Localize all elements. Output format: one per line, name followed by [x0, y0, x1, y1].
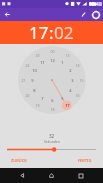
staticText: 15 [79, 78, 84, 83]
staticText: 19 [35, 103, 40, 108]
staticText: 4 [69, 88, 72, 93]
button[interactable]: 16 [73, 91, 82, 100]
staticText: 7 [41, 96, 44, 101]
button[interactable] [7, 146, 96, 153]
staticText: 2 [69, 68, 72, 73]
button[interactable]: 3 [68, 76, 76, 84]
staticText: 21 [21, 78, 26, 83]
staticText: : [49, 21, 54, 44]
button[interactable]: 20 [23, 91, 32, 100]
button[interactable]: 8 [30, 86, 38, 94]
button[interactable]: 12 [48, 56, 56, 64]
staticText: 8 [33, 88, 36, 93]
staticText: 17 [65, 103, 70, 108]
staticText: 13 [65, 53, 70, 58]
button[interactable]: 11 [38, 58, 46, 66]
button[interactable]: Settings [90, 9, 101, 20]
button[interactable]: 14 [73, 61, 82, 70]
button[interactable]: 13 [63, 51, 72, 60]
button[interactable]: 1 [58, 58, 66, 66]
staticText: 1 [61, 60, 64, 65]
staticText: 6 [51, 98, 54, 103]
staticText: 00 [50, 49, 55, 54]
button[interactable]: 23 [33, 51, 42, 60]
staticText: 3 [71, 78, 74, 83]
staticText: 20 [25, 93, 30, 98]
button[interactable]: 22 [23, 61, 32, 70]
button[interactable]: FERTIG [73, 156, 97, 165]
staticText: 22 [25, 63, 30, 68]
staticText: FERTIG [78, 158, 92, 163]
button[interactable]: Home [45, 169, 58, 182]
staticText: 11 [40, 60, 45, 65]
staticText: Sekunden [44, 139, 60, 144]
staticText: 18 [50, 107, 55, 112]
button[interactable]: Recents [74, 169, 87, 182]
button[interactable]: 18 [48, 105, 57, 114]
button[interactable]: 21 [19, 76, 28, 85]
button[interactable]: 02 [54, 21, 74, 44]
button[interactable]: ZURÜCK [6, 156, 32, 165]
button[interactable]: 19 [33, 101, 42, 110]
button[interactable]: 17 [63, 101, 72, 110]
button[interactable]: Edit [78, 9, 89, 20]
button[interactable]: 9 [28, 76, 36, 84]
staticText: 12 [50, 58, 55, 63]
staticText: 9 [31, 78, 34, 83]
button[interactable]: Back [16, 169, 29, 182]
button[interactable]: 17 [29, 21, 49, 44]
staticText: 16 [75, 93, 80, 98]
staticText: 12:48 [89, 1, 102, 8]
button[interactable]: 7 [38, 94, 46, 102]
button[interactable]: 00 [48, 47, 57, 56]
button[interactable]: 10 [30, 66, 38, 74]
staticText: 14 [75, 63, 80, 68]
staticText: 23 [35, 53, 40, 58]
button[interactable]: 15 [77, 76, 86, 85]
button[interactable]: 2 [66, 66, 74, 74]
staticText: 10 [32, 68, 37, 73]
staticText: 5 [61, 96, 64, 101]
button[interactable]: 5 [58, 94, 66, 102]
button[interactable]: 4 [66, 86, 74, 94]
staticText: ZURÜCK [11, 158, 27, 163]
button[interactable]: Back [2, 9, 13, 20]
button[interactable]: 6 [48, 96, 56, 104]
staticText: 32 [49, 133, 55, 139]
